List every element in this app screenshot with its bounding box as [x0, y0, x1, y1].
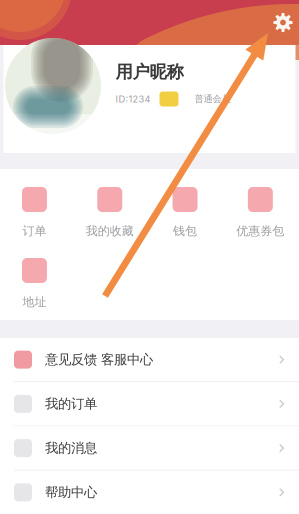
button[interactable]: 我的订单 — [0, 382, 299, 425]
staticText: 地址 — [22, 294, 46, 309]
button[interactable]: 我的收藏 — [72, 187, 147, 237]
button[interactable]: 帮助中心 — [0, 471, 299, 514]
staticText: 普通会员 — [194, 93, 230, 105]
staticText: ID:1234 — [115, 93, 150, 105]
staticText: 我的消息 — [45, 440, 97, 456]
button[interactable]: 订单 — [0, 187, 72, 237]
staticText: 优惠券包 — [236, 223, 284, 238]
button[interactable]: 钱包 — [147, 187, 223, 237]
button[interactable]: Settings — [268, 7, 298, 37]
staticText: 我的收藏 — [86, 223, 134, 238]
staticText: 用户昵称 — [115, 61, 183, 83]
button[interactable]: 我的消息 — [0, 426, 299, 470]
staticText: 帮助中心 — [45, 484, 97, 501]
button[interactable]: 意见反馈 客服中心 — [0, 338, 299, 381]
staticText: 意见反馈 客服中心 — [45, 351, 153, 368]
button[interactable]: 优惠券包 — [223, 187, 298, 237]
button[interactable]: 地址 — [0, 258, 72, 308]
staticText: 我的订单 — [45, 395, 97, 412]
staticText: 订单 — [22, 223, 46, 238]
staticText: 钱包 — [173, 223, 197, 238]
